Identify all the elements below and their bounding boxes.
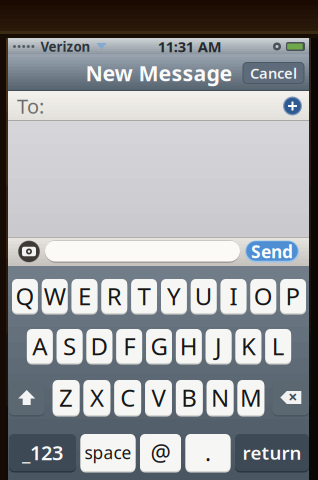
button[interactable]: _123 xyxy=(9,432,76,472)
button[interactable]: B xyxy=(176,378,203,416)
staticText: R xyxy=(107,280,122,312)
button[interactable]: A xyxy=(27,327,53,364)
staticText: P xyxy=(286,280,301,312)
button[interactable]: Y xyxy=(161,277,187,314)
button[interactable]: I xyxy=(221,277,246,314)
button[interactable]: Add contact xyxy=(283,96,302,115)
button[interactable]: Delete xyxy=(272,378,309,416)
staticText: Y xyxy=(167,280,181,312)
button[interactable]: F xyxy=(116,327,142,364)
button[interactable]: X xyxy=(83,378,110,416)
staticText: New Message xyxy=(85,59,232,87)
button[interactable]: C xyxy=(114,378,141,416)
staticText: I xyxy=(229,280,237,312)
staticText: B xyxy=(181,382,197,413)
button[interactable]: V xyxy=(145,378,172,416)
staticText: V xyxy=(151,382,165,413)
staticText: D xyxy=(90,330,108,362)
staticText: J xyxy=(215,330,222,362)
button[interactable]: . xyxy=(185,432,230,472)
button[interactable]: W xyxy=(42,277,68,314)
staticText: S xyxy=(63,330,76,362)
button[interactable]: Send xyxy=(245,240,299,262)
button[interactable]: T xyxy=(131,277,157,314)
staticText: W xyxy=(44,280,66,312)
button[interactable]: Cancel xyxy=(243,62,304,83)
staticText: Q xyxy=(15,280,34,312)
staticText: A xyxy=(32,330,47,362)
staticText: C xyxy=(120,382,135,413)
button[interactable]: L xyxy=(265,327,291,364)
button[interactable]: G xyxy=(146,327,172,364)
staticText: @ xyxy=(150,437,170,467)
staticText: O xyxy=(254,280,273,312)
button[interactable]: S xyxy=(57,327,82,364)
staticText: To: xyxy=(17,93,44,119)
staticText: H xyxy=(180,330,198,362)
staticText: . xyxy=(205,437,211,467)
button[interactable]: return xyxy=(235,432,309,472)
staticText: space xyxy=(84,441,131,464)
button[interactable]: Camera xyxy=(18,240,40,262)
staticText: return xyxy=(242,440,301,465)
button[interactable]: Z xyxy=(53,378,79,416)
staticText: Cancel xyxy=(250,63,297,83)
staticText: G xyxy=(150,330,167,362)
button[interactable]: Shift xyxy=(9,378,45,416)
button[interactable]: Q xyxy=(12,277,38,314)
button[interactable]: M xyxy=(237,378,264,416)
staticText: X xyxy=(90,382,104,413)
button[interactable]: R xyxy=(101,277,127,314)
button[interactable]: O xyxy=(250,277,276,314)
button[interactable]: P xyxy=(280,277,306,314)
staticText: Verizon xyxy=(34,38,96,55)
button[interactable]: space xyxy=(80,432,135,472)
button[interactable]: @ xyxy=(140,432,181,472)
staticText: M xyxy=(240,382,262,413)
staticText: L xyxy=(272,330,285,362)
staticText: Z xyxy=(59,382,73,413)
staticText: U xyxy=(195,280,213,312)
staticText: E xyxy=(78,280,91,312)
button[interactable]: K xyxy=(235,327,261,364)
button[interactable]: E xyxy=(72,277,97,314)
staticText: 11:31 AM xyxy=(158,37,222,56)
button[interactable]: D xyxy=(86,327,112,364)
button[interactable]: N xyxy=(207,378,233,416)
staticText: _123 xyxy=(22,439,63,466)
staticText: Send xyxy=(251,240,293,263)
staticText: K xyxy=(241,330,256,362)
button[interactable]: U xyxy=(191,277,217,314)
staticText: T xyxy=(138,280,151,312)
button[interactable]: H xyxy=(176,327,202,364)
staticText: F xyxy=(123,330,135,362)
staticText: × xyxy=(288,386,297,407)
button[interactable]: J xyxy=(206,327,231,364)
staticText: N xyxy=(211,382,229,413)
